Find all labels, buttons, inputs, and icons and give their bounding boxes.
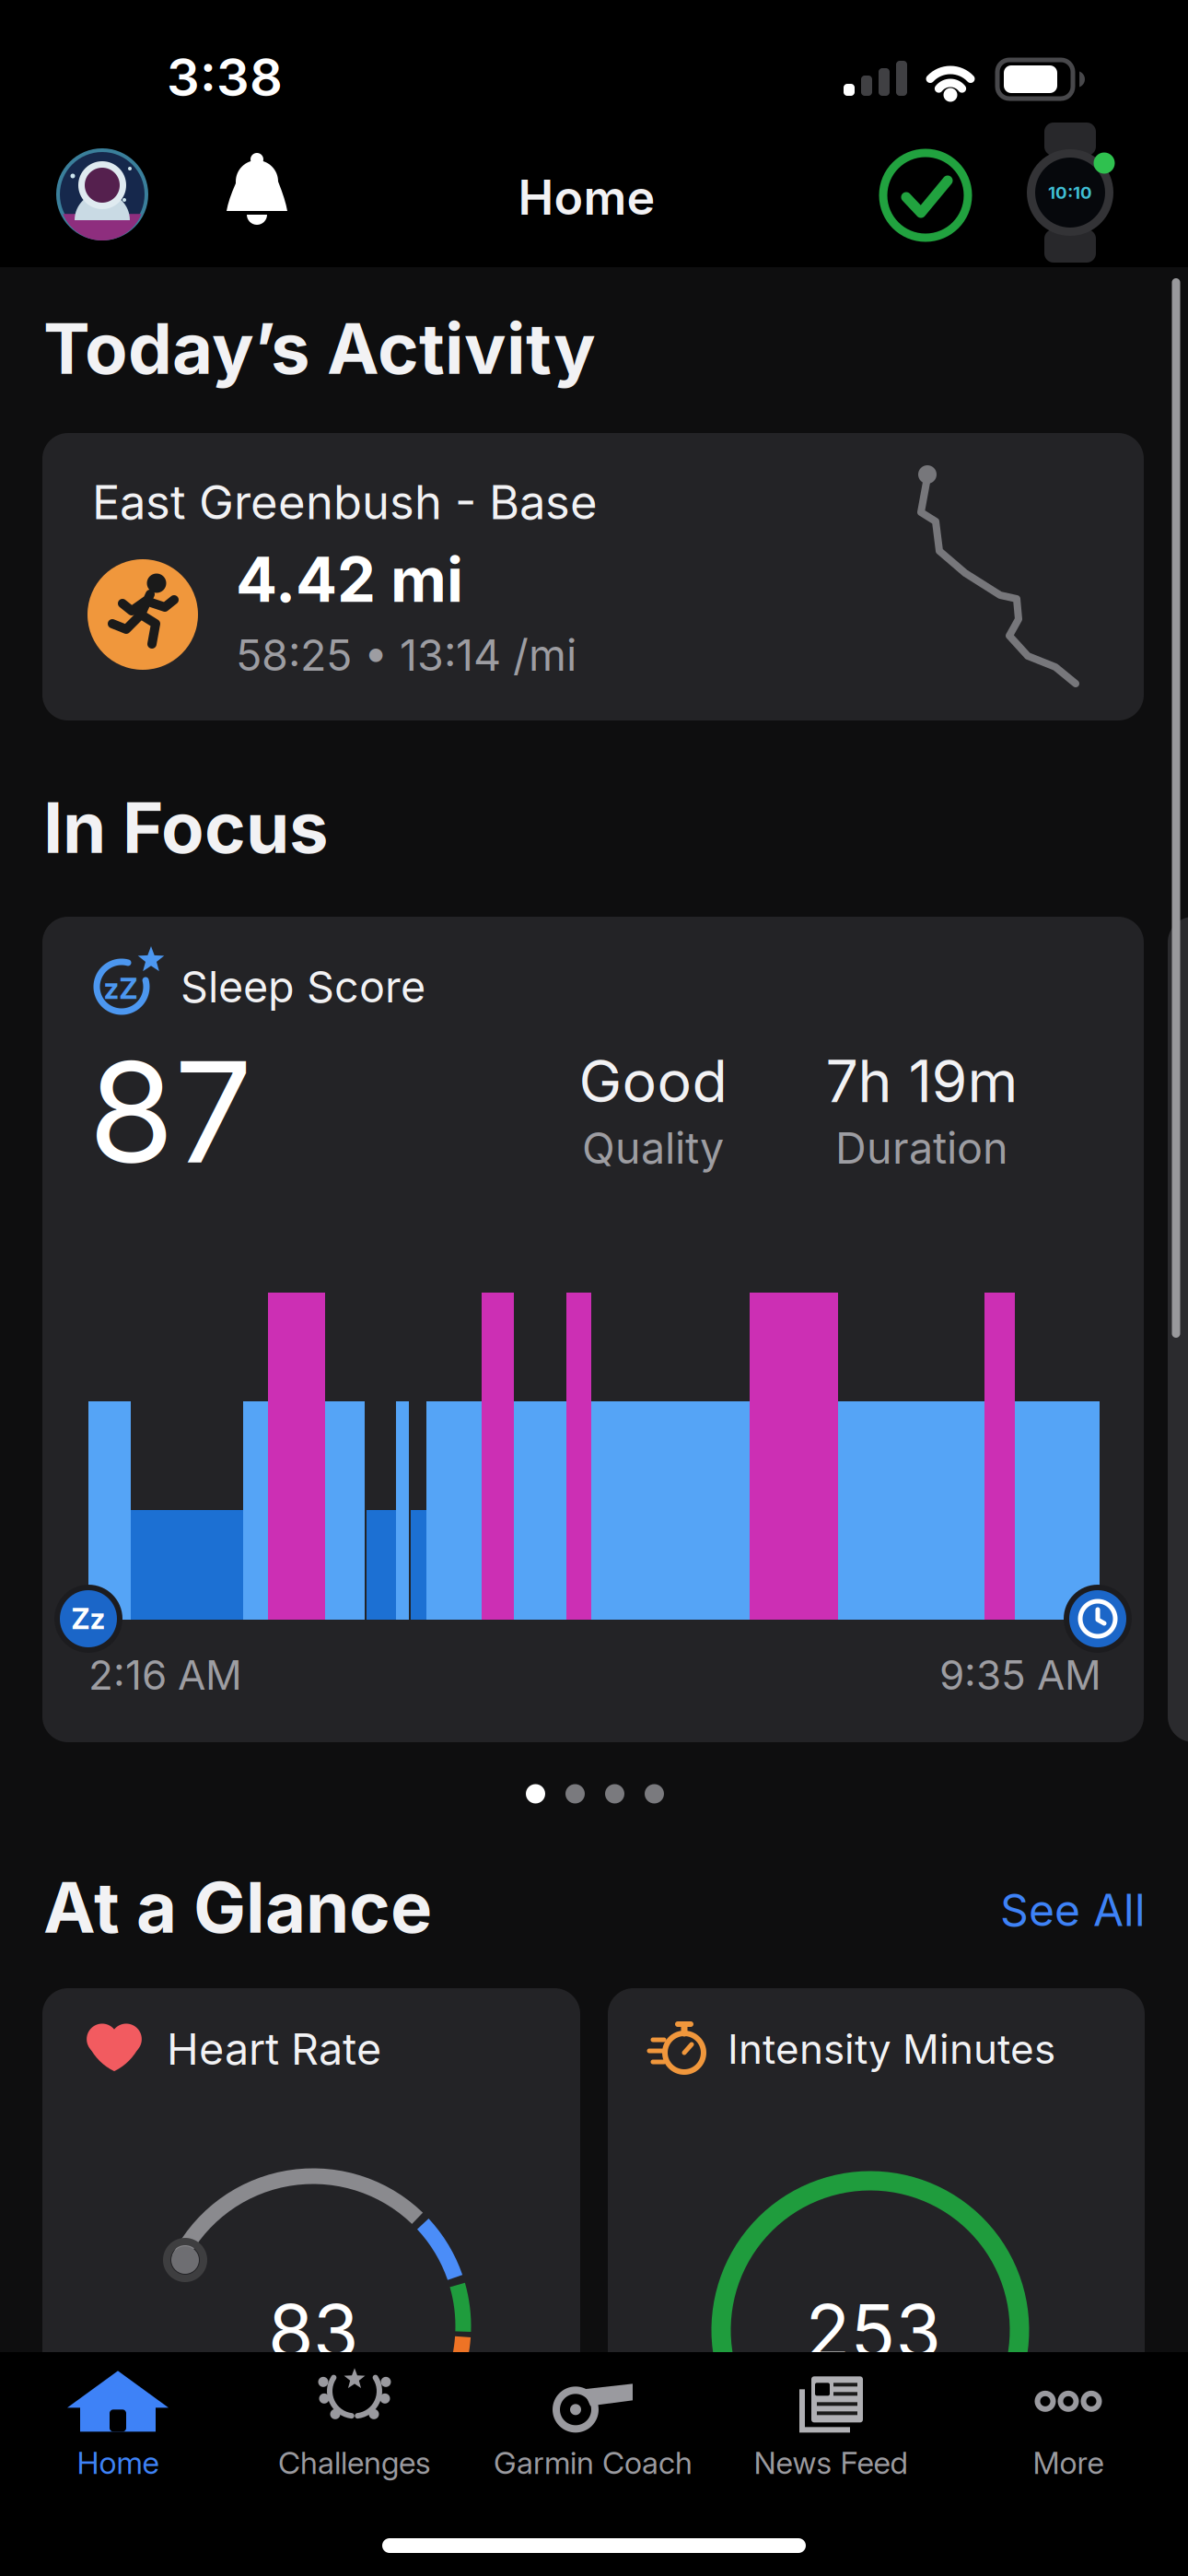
staticText: 83 [268, 2287, 358, 2374]
staticText: Home [518, 169, 655, 225]
button[interactable]: News Feed [713, 2369, 949, 2483]
staticText: At a Glance [43, 1866, 432, 1948]
button[interactable]: Garmin Coach [475, 2369, 711, 2483]
staticText: East Greenbush - Base [92, 475, 598, 530]
staticText: 253 [805, 2287, 941, 2374]
staticText: Intensity Minutes [728, 2025, 1055, 2073]
staticText: Sleep Score [181, 961, 425, 1012]
staticText: Quality [582, 1123, 724, 1173]
staticText: 58:25 • 13:14 /mi [236, 630, 577, 680]
staticText: Duration [835, 1123, 1008, 1173]
button[interactable] [42, 1988, 580, 2414]
staticText: In Focus [43, 786, 329, 869]
button[interactable]: 10:10 [1024, 128, 1116, 257]
button[interactable]: See All [1000, 1884, 1146, 1936]
staticText: 9:35 AM [939, 1651, 1101, 1699]
staticText: Garmin Coach [494, 2445, 693, 2481]
button[interactable] [223, 154, 291, 228]
staticText: Today’s Activity [43, 307, 596, 390]
button[interactable] [56, 148, 148, 240]
button[interactable]: Challenges [237, 2369, 472, 2483]
staticText: Home [77, 2445, 159, 2481]
staticText: 10:10 [1048, 182, 1092, 203]
staticText: 87 [88, 1030, 252, 1194]
staticText: More [1033, 2445, 1104, 2481]
staticText: 7h 19m [826, 1047, 1018, 1115]
staticText: See All [1000, 1884, 1146, 1936]
staticText: Challenges [278, 2445, 431, 2481]
staticText: 2:16 AM [88, 1651, 242, 1699]
button[interactable] [883, 153, 968, 238]
button[interactable] [608, 1988, 1145, 2414]
staticText: Zz [71, 1602, 105, 1635]
button[interactable] [42, 917, 1144, 1742]
staticText: 3:38 [167, 47, 283, 108]
staticText: Heart Rate [167, 2024, 381, 2074]
staticText: Good [579, 1047, 727, 1115]
button[interactable]: Home [0, 2369, 236, 2483]
button[interactable] [42, 433, 1144, 720]
staticText: 4.42 mi [236, 543, 463, 616]
button[interactable]: More [950, 2369, 1186, 2483]
staticText: zZ [104, 972, 138, 1005]
staticText: News Feed [754, 2445, 908, 2481]
